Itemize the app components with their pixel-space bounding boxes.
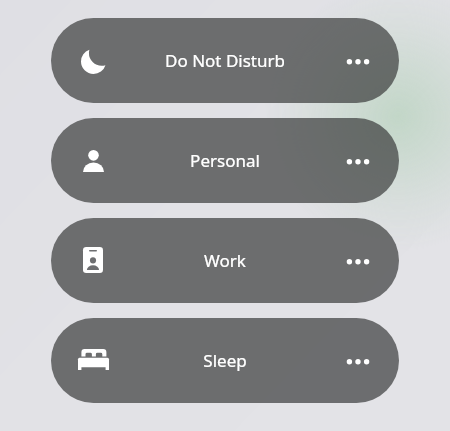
other: Do Not Disturb (77, 45, 109, 77)
staticText: Personal (190, 149, 260, 172)
button[interactable]: Do Not Disturb (51, 18, 399, 103)
button[interactable]: Personal (51, 118, 399, 203)
staticText: Do Not Disturb (165, 49, 285, 72)
staticText: Sleep (203, 349, 247, 372)
other: Personal (77, 145, 109, 177)
button[interactable]: More options (343, 146, 373, 176)
button[interactable]: More options (343, 46, 373, 76)
button[interactable]: Sleep (51, 318, 399, 403)
button[interactable]: More options (343, 346, 373, 376)
other: Sleep (77, 345, 109, 377)
button[interactable]: More options (343, 246, 373, 276)
button[interactable]: Work (51, 218, 399, 303)
other: Work (77, 245, 109, 277)
staticText: Work (204, 249, 246, 272)
